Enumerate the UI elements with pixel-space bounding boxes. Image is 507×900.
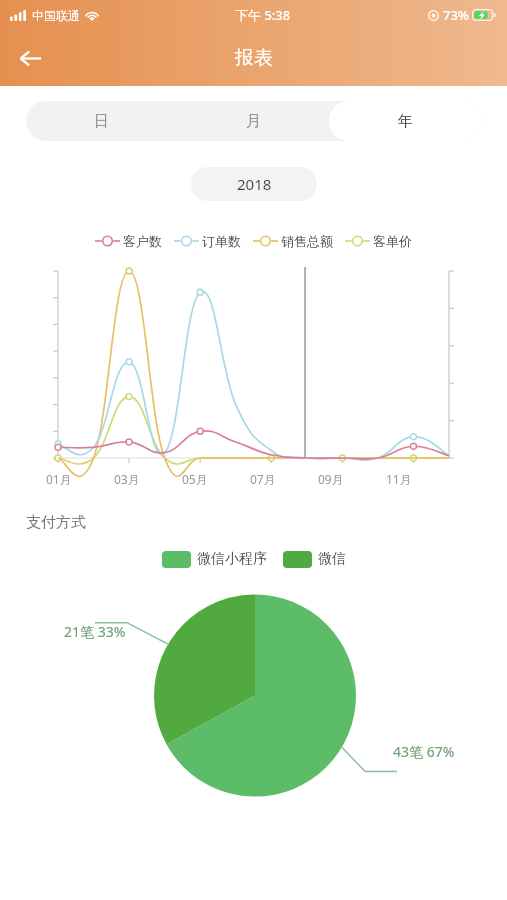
staticText: 日 bbox=[94, 112, 109, 131]
button[interactable]: 订单数 bbox=[174, 233, 241, 249]
button[interactable]: 微信 bbox=[283, 550, 346, 568]
button[interactable]: 微信小程序 bbox=[162, 550, 267, 568]
staticText: 年 bbox=[398, 112, 413, 131]
staticText: 销售总额 bbox=[281, 233, 333, 249]
staticText: 月 bbox=[246, 112, 261, 131]
staticText: 下午 5:38 bbox=[235, 6, 291, 24]
staticText: 09月 bbox=[318, 471, 344, 487]
button[interactable]: 2018 bbox=[191, 167, 317, 201]
staticText: 微信 bbox=[318, 550, 346, 568]
button[interactable]: 月 bbox=[177, 101, 329, 141]
button[interactable]: 客单价 bbox=[345, 233, 412, 249]
staticText: 中国联通 bbox=[32, 8, 80, 23]
staticText: 73% bbox=[443, 6, 469, 24]
staticText: 21笔 33% bbox=[64, 622, 126, 641]
staticText: 03月 bbox=[114, 471, 140, 487]
staticText: 报表 bbox=[235, 46, 273, 70]
staticText: 微信小程序 bbox=[197, 550, 267, 568]
staticText: 11月 bbox=[386, 471, 412, 487]
button[interactable]: 日 bbox=[26, 101, 177, 141]
staticText: 07月 bbox=[250, 471, 276, 487]
staticText: 客单价 bbox=[373, 233, 412, 249]
staticText: 客户数 bbox=[123, 233, 162, 249]
button[interactable]: 年 bbox=[329, 101, 481, 141]
staticText: 01月 bbox=[46, 471, 72, 487]
staticText: 支付方式 bbox=[26, 513, 86, 532]
staticText: 05月 bbox=[182, 471, 208, 487]
staticText: 43笔 67% bbox=[393, 742, 455, 761]
button[interactable]: 销售总额 bbox=[253, 233, 333, 249]
button[interactable]: 客户数 bbox=[95, 233, 162, 249]
staticText: 订单数 bbox=[202, 233, 241, 249]
button[interactable]: Back bbox=[6, 34, 54, 82]
staticText: 2018 bbox=[237, 174, 272, 194]
